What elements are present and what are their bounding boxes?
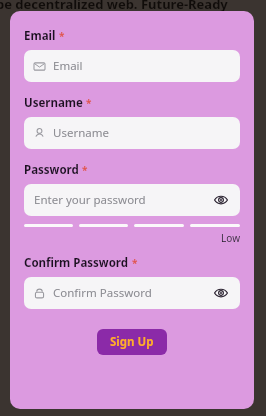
staticText: Username bbox=[53, 125, 109, 141]
staticText: * bbox=[86, 96, 92, 110]
staticText: * bbox=[132, 256, 138, 270]
button[interactable]: Username bbox=[24, 117, 240, 149]
button[interactable]: Sign Up bbox=[97, 329, 167, 355]
staticText: Confirm Password bbox=[24, 255, 129, 271]
staticText: Sign Up bbox=[110, 334, 154, 350]
staticText: Username bbox=[24, 95, 83, 111]
staticText: Confirm Password bbox=[53, 285, 152, 301]
button[interactable]: Confirm Password bbox=[24, 277, 240, 309]
button[interactable]: Email bbox=[24, 50, 240, 82]
button[interactable]: Show password bbox=[212, 191, 230, 209]
staticText: Email bbox=[53, 58, 83, 74]
staticText: Email bbox=[24, 28, 56, 44]
staticText: Password bbox=[24, 162, 79, 178]
button[interactable]: Enter your password bbox=[24, 184, 240, 216]
staticText: Low bbox=[24, 231, 240, 245]
staticText: Enter your password bbox=[34, 192, 146, 208]
button[interactable]: Show confirm password bbox=[212, 284, 230, 302]
staticText: * bbox=[82, 163, 88, 177]
staticText: pe decentralized web. Future-Ready bbox=[0, 0, 228, 13]
staticText: * bbox=[59, 29, 65, 43]
